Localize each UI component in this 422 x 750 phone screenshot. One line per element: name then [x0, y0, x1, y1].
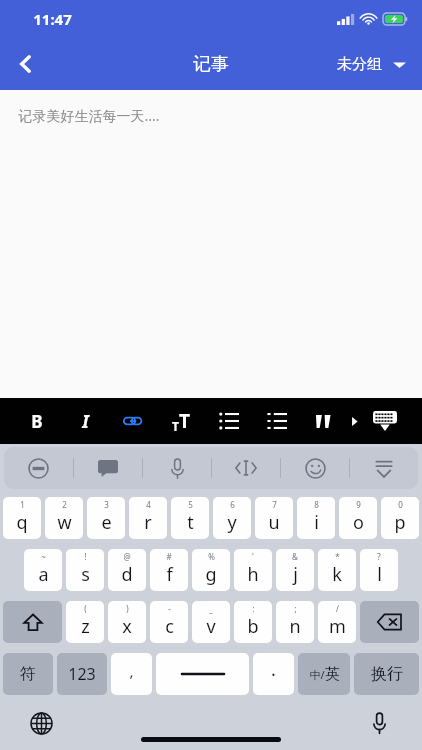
button[interactable]: Comma	[111, 653, 152, 695]
button[interactable]: Hide keyboard	[370, 401, 400, 441]
button[interactable]: 换行	[354, 653, 419, 695]
button[interactable]: ?	[360, 549, 398, 591]
button[interactable]: More	[344, 404, 364, 438]
staticText: ,	[129, 661, 134, 681]
button[interactable]: Period	[253, 653, 294, 695]
staticText: s	[81, 562, 90, 587]
staticText: 英	[325, 665, 340, 684]
button[interactable]: *	[318, 549, 356, 591]
button[interactable]: @	[108, 549, 146, 591]
button[interactable]: 5	[171, 497, 209, 539]
button[interactable]: Quote	[310, 401, 340, 441]
staticText: )	[126, 603, 129, 614]
staticText: B	[31, 410, 43, 433]
button[interactable]: %	[192, 549, 230, 591]
button[interactable]: 符号	[3, 653, 53, 695]
staticText: a	[38, 562, 49, 587]
button[interactable]: Text size	[166, 401, 196, 441]
button[interactable]: &	[276, 549, 314, 591]
button[interactable]: 中英切换	[298, 653, 350, 695]
staticText: l	[377, 562, 382, 587]
staticText: -	[168, 603, 171, 614]
staticText: %	[208, 551, 215, 562]
button[interactable]: 8	[297, 497, 335, 539]
staticText: 5	[188, 499, 193, 510]
button[interactable]: _	[192, 601, 230, 643]
staticText: #	[166, 551, 172, 562]
button[interactable]: 1	[3, 497, 41, 539]
staticText: _	[209, 603, 213, 614]
staticText: w	[57, 510, 72, 535]
button[interactable]: 2	[45, 497, 83, 539]
staticText: '	[252, 551, 254, 562]
button[interactable]: Dictation	[358, 702, 400, 744]
button[interactable]: 未分组	[331, 47, 412, 82]
staticText: 中/	[309, 667, 325, 682]
staticText: i	[314, 510, 319, 535]
button[interactable]: Messages	[74, 447, 142, 489]
staticText: (	[84, 603, 87, 614]
button[interactable]: 9	[339, 497, 377, 539]
button[interactable]: 7	[255, 497, 293, 539]
button[interactable]: Italic	[70, 401, 100, 441]
staticText: /	[336, 603, 339, 614]
staticText: o	[353, 510, 364, 535]
button[interactable]: 123	[57, 653, 107, 695]
staticText: 4	[146, 499, 151, 510]
button[interactable]: -	[150, 601, 188, 643]
staticText: x	[122, 614, 132, 639]
button[interactable]: /	[318, 601, 356, 643]
button[interactable]: Space	[156, 653, 249, 695]
staticText: T	[179, 408, 190, 434]
button[interactable]: Voice input	[143, 447, 211, 489]
staticText: m	[329, 614, 346, 639]
staticText: :	[252, 603, 255, 614]
staticText: 11:47	[33, 9, 72, 29]
button[interactable]: Collapse	[350, 447, 418, 489]
button[interactable]: Numbered list	[262, 401, 292, 441]
button[interactable]: (	[66, 601, 104, 643]
staticText: 8	[314, 499, 319, 510]
button[interactable]: Cursor	[212, 447, 280, 489]
button[interactable]: Link	[118, 401, 148, 441]
button[interactable]: 3	[87, 497, 125, 539]
staticText: ?	[377, 551, 381, 562]
staticText: ·	[271, 662, 276, 687]
staticText: t	[187, 510, 194, 535]
staticText: *	[335, 551, 340, 562]
staticText: 2	[62, 499, 67, 510]
button[interactable]: Bulleted list	[214, 401, 244, 441]
button[interactable]: Back	[0, 38, 52, 90]
button[interactable]: !	[66, 549, 104, 591]
button[interactable]: :	[234, 601, 272, 643]
staticText: h	[247, 562, 259, 587]
button[interactable]: Emoji	[281, 447, 349, 489]
staticText: v	[206, 614, 216, 639]
staticText: T	[172, 418, 179, 434]
staticText: u	[268, 510, 280, 535]
button[interactable]: Delete	[360, 601, 419, 643]
button[interactable]: Bold	[22, 401, 52, 441]
button[interactable]: Change language	[20, 702, 62, 744]
staticText: &	[292, 551, 298, 562]
staticText: z	[81, 614, 90, 639]
staticText: 123	[68, 663, 96, 685]
button[interactable]: ;	[276, 601, 314, 643]
button[interactable]: )	[108, 601, 146, 643]
button[interactable]: Shift	[3, 601, 62, 643]
staticText: 7	[272, 499, 277, 510]
button[interactable]: #	[150, 549, 188, 591]
button[interactable]: 记录美好生活每一天....	[0, 90, 422, 398]
button[interactable]: ~	[24, 549, 62, 591]
staticText: !	[84, 551, 87, 562]
button[interactable]: 0	[381, 497, 419, 539]
staticText: j	[293, 562, 298, 587]
button[interactable]: '	[234, 549, 272, 591]
button[interactable]: 6	[213, 497, 251, 539]
button[interactable]: 4	[129, 497, 167, 539]
button[interactable]: Input method	[4, 447, 73, 489]
staticText: k	[332, 562, 342, 587]
staticText: r	[144, 510, 152, 535]
staticText: @	[123, 551, 131, 562]
staticText: b	[247, 614, 259, 639]
